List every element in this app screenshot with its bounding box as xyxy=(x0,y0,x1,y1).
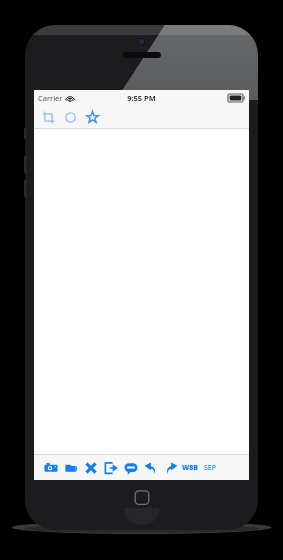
staticText: Carrier xyxy=(38,93,63,103)
button[interactable]: Camera xyxy=(42,459,59,476)
button[interactable]: SEP xyxy=(204,460,217,476)
button[interactable]: W8B xyxy=(182,460,199,476)
staticText: W8B xyxy=(182,463,199,473)
button[interactable]: Redo xyxy=(162,459,179,476)
button[interactable]: LINE xyxy=(122,459,139,476)
button[interactable]: Crop xyxy=(41,110,56,125)
button[interactable]: Export xyxy=(102,459,119,476)
button[interactable]: Close xyxy=(82,459,99,476)
button[interactable]: Star xyxy=(85,110,100,125)
button[interactable]: Ellipse xyxy=(63,110,78,125)
button[interactable]: Folder xyxy=(62,459,79,476)
button[interactable]: Undo xyxy=(142,459,159,476)
staticText: SEP xyxy=(204,463,217,473)
button[interactable]: Home xyxy=(125,484,159,518)
staticText: 9:55 PM xyxy=(127,93,156,103)
